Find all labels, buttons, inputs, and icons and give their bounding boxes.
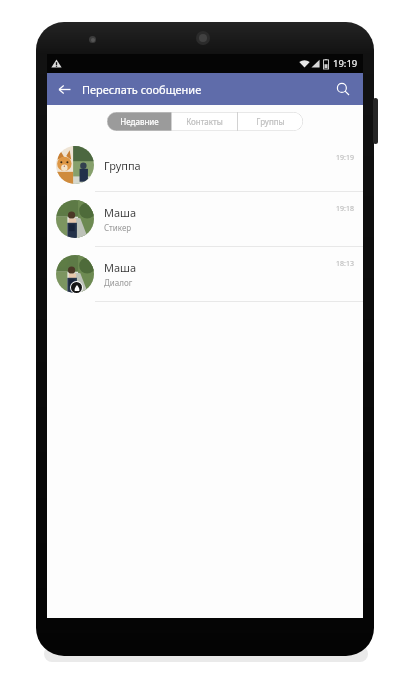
staticText: Группы: [256, 116, 285, 127]
staticText: 19:18: [336, 204, 354, 214]
button[interactable]: Маша: [47, 192, 363, 247]
button[interactable]: Контакты: [172, 112, 237, 131]
button[interactable]: Search: [329, 75, 357, 103]
button[interactable]: Группы: [238, 112, 303, 131]
staticText: Маша: [104, 205, 137, 220]
staticText: Маша: [104, 260, 137, 275]
button[interactable]: Недавние: [107, 112, 171, 131]
staticText: Контакты: [186, 116, 223, 127]
button[interactable]: Маша: [47, 247, 363, 302]
staticText: Группа: [104, 158, 141, 173]
staticText: 19:19: [336, 153, 354, 163]
button[interactable]: Back: [50, 75, 78, 103]
staticText: Диалог: [104, 277, 133, 288]
staticText: Стикер: [104, 222, 132, 233]
staticText: 19:19: [333, 57, 358, 70]
staticText: Переслать сообщение: [82, 82, 202, 97]
button[interactable]: Группа: [47, 139, 363, 192]
staticText: 18:13: [336, 259, 354, 269]
staticText: Недавние: [120, 116, 159, 127]
